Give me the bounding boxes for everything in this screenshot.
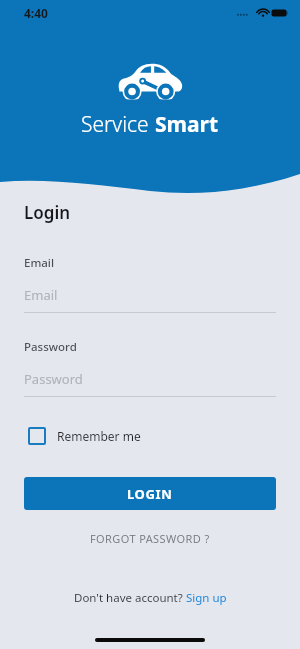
staticText: Sign up [186, 590, 227, 606]
staticText: FORGOT PASSWORD ? [90, 531, 210, 546]
staticText: Password [24, 370, 83, 388]
button[interactable]: Sign up [186, 590, 227, 606]
button[interactable]: FORGOT PASSWORD ? [24, 531, 276, 546]
staticText: Service [81, 110, 155, 139]
staticText: Don't have account? [74, 590, 186, 606]
staticText: Smart [155, 110, 219, 139]
other: Service Smart car logo [118, 62, 182, 98]
other: Signal, Wi-Fi and battery status [236, 6, 288, 20]
staticText: Email [24, 286, 58, 304]
staticText: 4:40 [24, 5, 48, 21]
staticText: Email [24, 255, 55, 271]
staticText: Password [24, 339, 77, 355]
button[interactable]: LOGIN [24, 477, 276, 510]
staticText: LOGIN [127, 485, 173, 503]
button[interactable]: Remember me [24, 424, 145, 448]
staticText: Login [24, 201, 71, 224]
staticText: Remember me [57, 428, 141, 444]
